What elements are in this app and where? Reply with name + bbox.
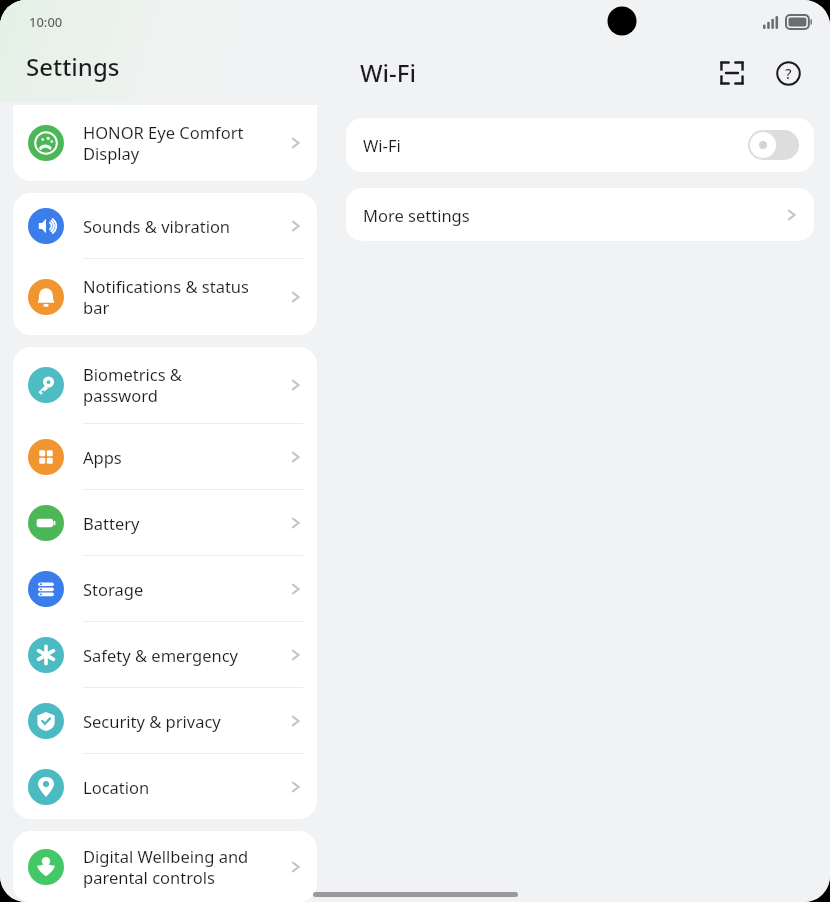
staticText: Notifications & status bar xyxy=(83,275,289,319)
button[interactable]: Help xyxy=(768,53,808,93)
button[interactable]: Apps xyxy=(13,424,317,490)
staticText: Sounds & vibration xyxy=(83,215,289,237)
staticText: Digital Wellbeing and parental controls xyxy=(83,845,289,889)
staticText: Biometrics & password xyxy=(83,363,289,407)
staticText: Settings xyxy=(26,50,120,83)
button[interactable]: HONOR Eye Comfort Display xyxy=(13,105,317,181)
staticText: Apps xyxy=(83,446,289,468)
staticText: ? xyxy=(785,64,792,83)
staticText: Wi-Fi xyxy=(360,56,712,89)
button[interactable]: Digital Wellbeing and parental controls xyxy=(13,831,317,902)
button[interactable]: More settings xyxy=(346,188,814,241)
staticText: Security & privacy xyxy=(83,710,289,732)
staticText: Wi-Fi xyxy=(363,134,748,156)
button[interactable]: Biometrics & password xyxy=(13,347,317,424)
staticText: HONOR Eye Comfort Display xyxy=(83,121,289,165)
button[interactable]: Sounds & vibration xyxy=(13,193,317,259)
button[interactable]: Battery xyxy=(13,490,317,556)
staticText: Safety & emergency xyxy=(83,644,289,666)
staticText: Storage xyxy=(83,578,289,600)
button[interactable]: Safety & emergency xyxy=(13,622,317,688)
staticText: Battery xyxy=(83,512,289,534)
staticText: More settings xyxy=(363,204,785,226)
button[interactable]: Location xyxy=(13,754,317,819)
button[interactable]: Wi-Fi toggle xyxy=(748,130,799,160)
button[interactable]: Wi-Fi xyxy=(346,118,814,172)
button[interactable]: Notifications & status bar xyxy=(13,259,317,335)
button[interactable]: Security & privacy xyxy=(13,688,317,754)
button[interactable]: Storage xyxy=(13,556,317,622)
staticText: Location xyxy=(83,776,289,798)
button[interactable]: Scan QR code xyxy=(712,53,752,93)
staticText: 10:00 xyxy=(29,13,63,31)
